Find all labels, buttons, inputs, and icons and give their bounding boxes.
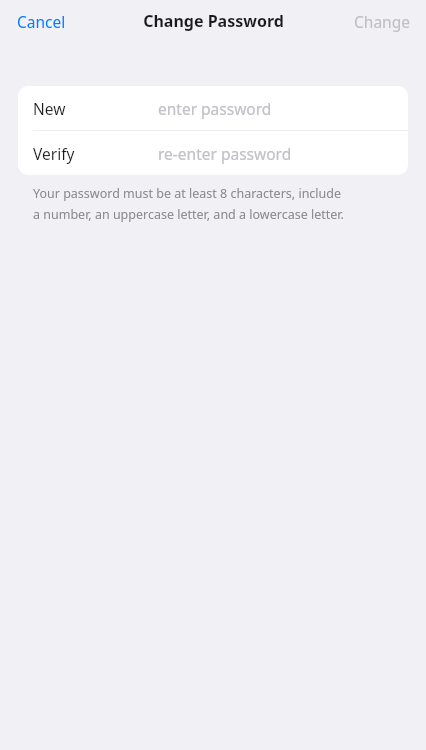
staticText: enter password xyxy=(158,98,272,119)
staticText: a number, an uppercase letter, and a low… xyxy=(33,206,344,223)
staticText: re-enter password xyxy=(158,143,292,164)
button[interactable]: Cancel xyxy=(0,5,78,38)
staticText: Change Password xyxy=(143,10,284,32)
staticText: Verify xyxy=(33,143,75,164)
button[interactable]: Verify xyxy=(18,131,408,175)
button[interactable]: New xyxy=(18,86,408,130)
button[interactable]: Change xyxy=(342,5,426,38)
staticText: Change xyxy=(354,11,410,32)
staticText: Your password must be at least 8 charact… xyxy=(33,185,342,202)
staticText: Cancel xyxy=(17,11,66,32)
staticText: New xyxy=(33,98,66,119)
